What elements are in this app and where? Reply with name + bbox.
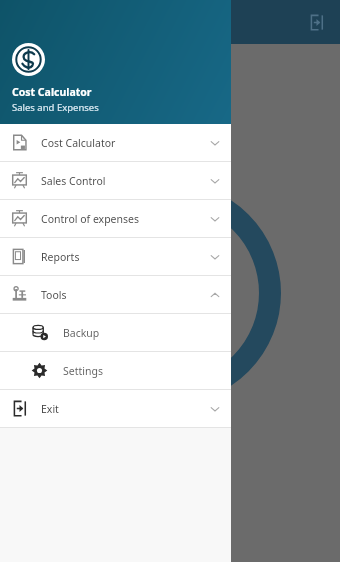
button[interactable]: Cost Calculator xyxy=(0,124,231,161)
staticText: Cost Calculator xyxy=(12,85,92,99)
staticText: Tools xyxy=(41,288,67,302)
staticText: Sales Control xyxy=(41,174,106,188)
button[interactable]: Tools xyxy=(0,276,231,313)
button[interactable]: Backup xyxy=(0,314,231,351)
staticText: Settings xyxy=(63,364,103,378)
staticText: Exit xyxy=(41,402,59,416)
staticText: Control of expenses xyxy=(41,212,139,226)
button[interactable]: Sales Control xyxy=(0,162,231,199)
button[interactable]: Control of expenses xyxy=(0,200,231,237)
staticText: Sales and Expenses xyxy=(12,101,99,114)
button[interactable]: Reports xyxy=(0,238,231,275)
button[interactable]: Exit xyxy=(0,390,231,427)
staticText: Reports xyxy=(41,250,80,264)
staticText: Backup xyxy=(63,326,100,340)
button[interactable]: Settings xyxy=(0,352,231,389)
button[interactable]: Exit xyxy=(300,6,332,38)
staticText: Cost Calculator xyxy=(41,136,116,150)
